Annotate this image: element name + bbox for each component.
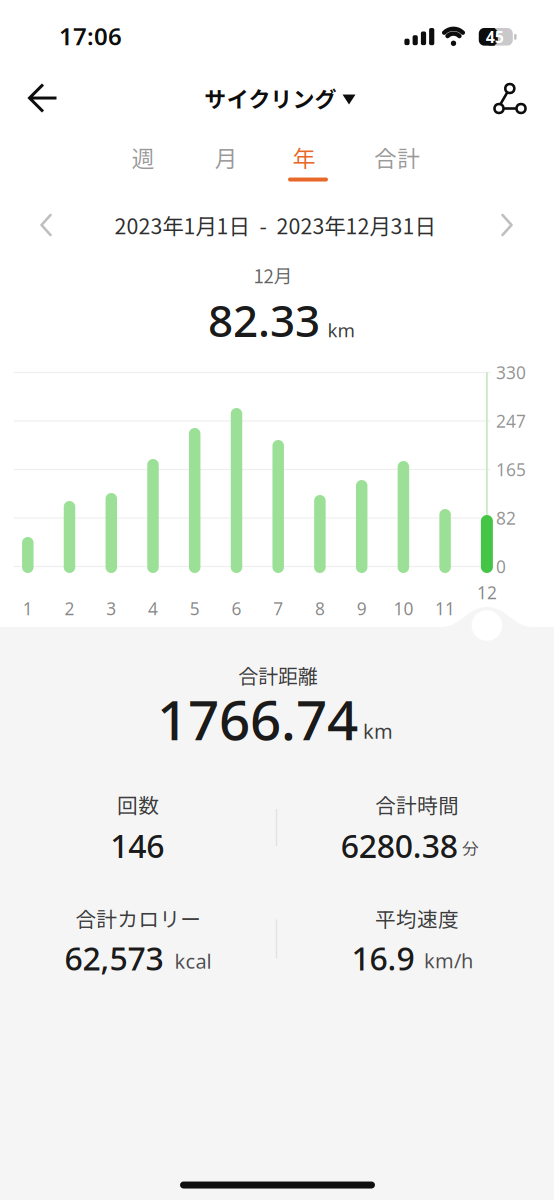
staticText: 9 xyxy=(357,597,367,620)
staticText: 合計距離 xyxy=(238,660,318,689)
staticText: km/h xyxy=(424,947,473,974)
staticText: km xyxy=(327,318,354,342)
staticText: 12月 xyxy=(253,261,292,288)
staticText: 146 xyxy=(110,824,164,867)
button[interactable]: 年 xyxy=(284,133,323,181)
staticText: 12 xyxy=(477,581,497,604)
staticText: 7 xyxy=(273,597,283,620)
button[interactable]: Previous year xyxy=(33,208,58,242)
staticText: 11 xyxy=(435,597,455,620)
staticText: サイクリング xyxy=(204,82,336,114)
staticText: 330 xyxy=(496,361,526,384)
staticText: 165 xyxy=(496,458,526,481)
staticText: 4 xyxy=(148,597,158,620)
button[interactable]: Back xyxy=(20,76,65,120)
button[interactable]: 週 xyxy=(123,133,162,181)
staticText: 82.33 xyxy=(208,291,320,349)
staticText: 1766.74 xyxy=(157,683,358,755)
staticText: 分 xyxy=(462,835,479,859)
staticText: 合計 xyxy=(374,141,420,173)
staticText: 16.9 xyxy=(351,937,414,979)
staticText: 45 xyxy=(486,26,504,47)
staticText: 2023年1月1日 - 2023年12月31日 xyxy=(114,210,435,240)
staticText: 合計時間 xyxy=(375,789,459,819)
button[interactable]: 合計 xyxy=(366,133,428,181)
staticText: 5 xyxy=(190,597,200,620)
button[interactable]: サイクリング xyxy=(204,82,355,114)
staticText: 年 xyxy=(292,141,315,173)
staticText: 0 xyxy=(496,555,506,578)
staticText: 週 xyxy=(131,141,154,173)
staticText: 6 xyxy=(231,597,241,620)
staticText: 1 xyxy=(23,597,33,620)
button[interactable]: Share xyxy=(488,78,531,119)
staticText: 合計カロリー xyxy=(75,903,201,933)
staticText: 8 xyxy=(315,597,325,620)
staticText: 10 xyxy=(393,597,413,620)
staticText: km xyxy=(363,718,393,744)
staticText: 月 xyxy=(214,141,237,173)
staticText: kcal xyxy=(174,948,211,974)
staticText: 17:06 xyxy=(59,20,122,52)
button[interactable]: Selected month scrubber xyxy=(472,610,502,641)
staticText: 62,573 xyxy=(64,937,163,979)
staticText: 82 xyxy=(496,506,516,529)
button[interactable]: Next year xyxy=(494,208,519,242)
staticText: 平均速度 xyxy=(375,903,459,933)
staticText: 6280.38 xyxy=(341,824,458,867)
button[interactable]: 月 xyxy=(206,133,245,181)
staticText: 3 xyxy=(106,597,116,620)
staticText: 回数 xyxy=(117,789,159,819)
staticText: 247 xyxy=(496,409,526,432)
staticText: 2 xyxy=(64,597,74,620)
